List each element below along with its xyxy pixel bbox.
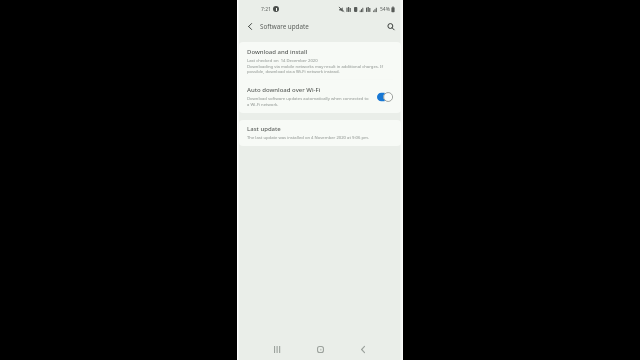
button[interactable]: Search [384,20,398,34]
staticText: Last update [247,125,281,133]
button[interactable]: Last update [239,120,401,146]
button[interactable]: Navigate up [243,20,256,33]
button[interactable]: Back [351,338,375,360]
button[interactable]: Download and install [239,42,401,79]
staticText: Last checked on 14 December 2020 Downloa… [247,58,393,74]
staticText: 54% [380,6,390,13]
staticText: Software update [260,22,309,31]
staticText: The last update was installed on 4 Novem… [247,135,370,141]
button[interactable]: Auto download over Wi-Fi [376,90,393,104]
button[interactable]: Home [308,338,332,360]
button[interactable]: Recent apps [265,338,289,360]
button[interactable]: Auto download over Wi-Fi [239,80,401,113]
staticText: Auto download over Wi-Fi [247,86,321,94]
staticText: Download and install [247,48,308,56]
staticText: 7:21 [261,6,271,13]
staticText: Download software updates automatically … [247,96,369,107]
